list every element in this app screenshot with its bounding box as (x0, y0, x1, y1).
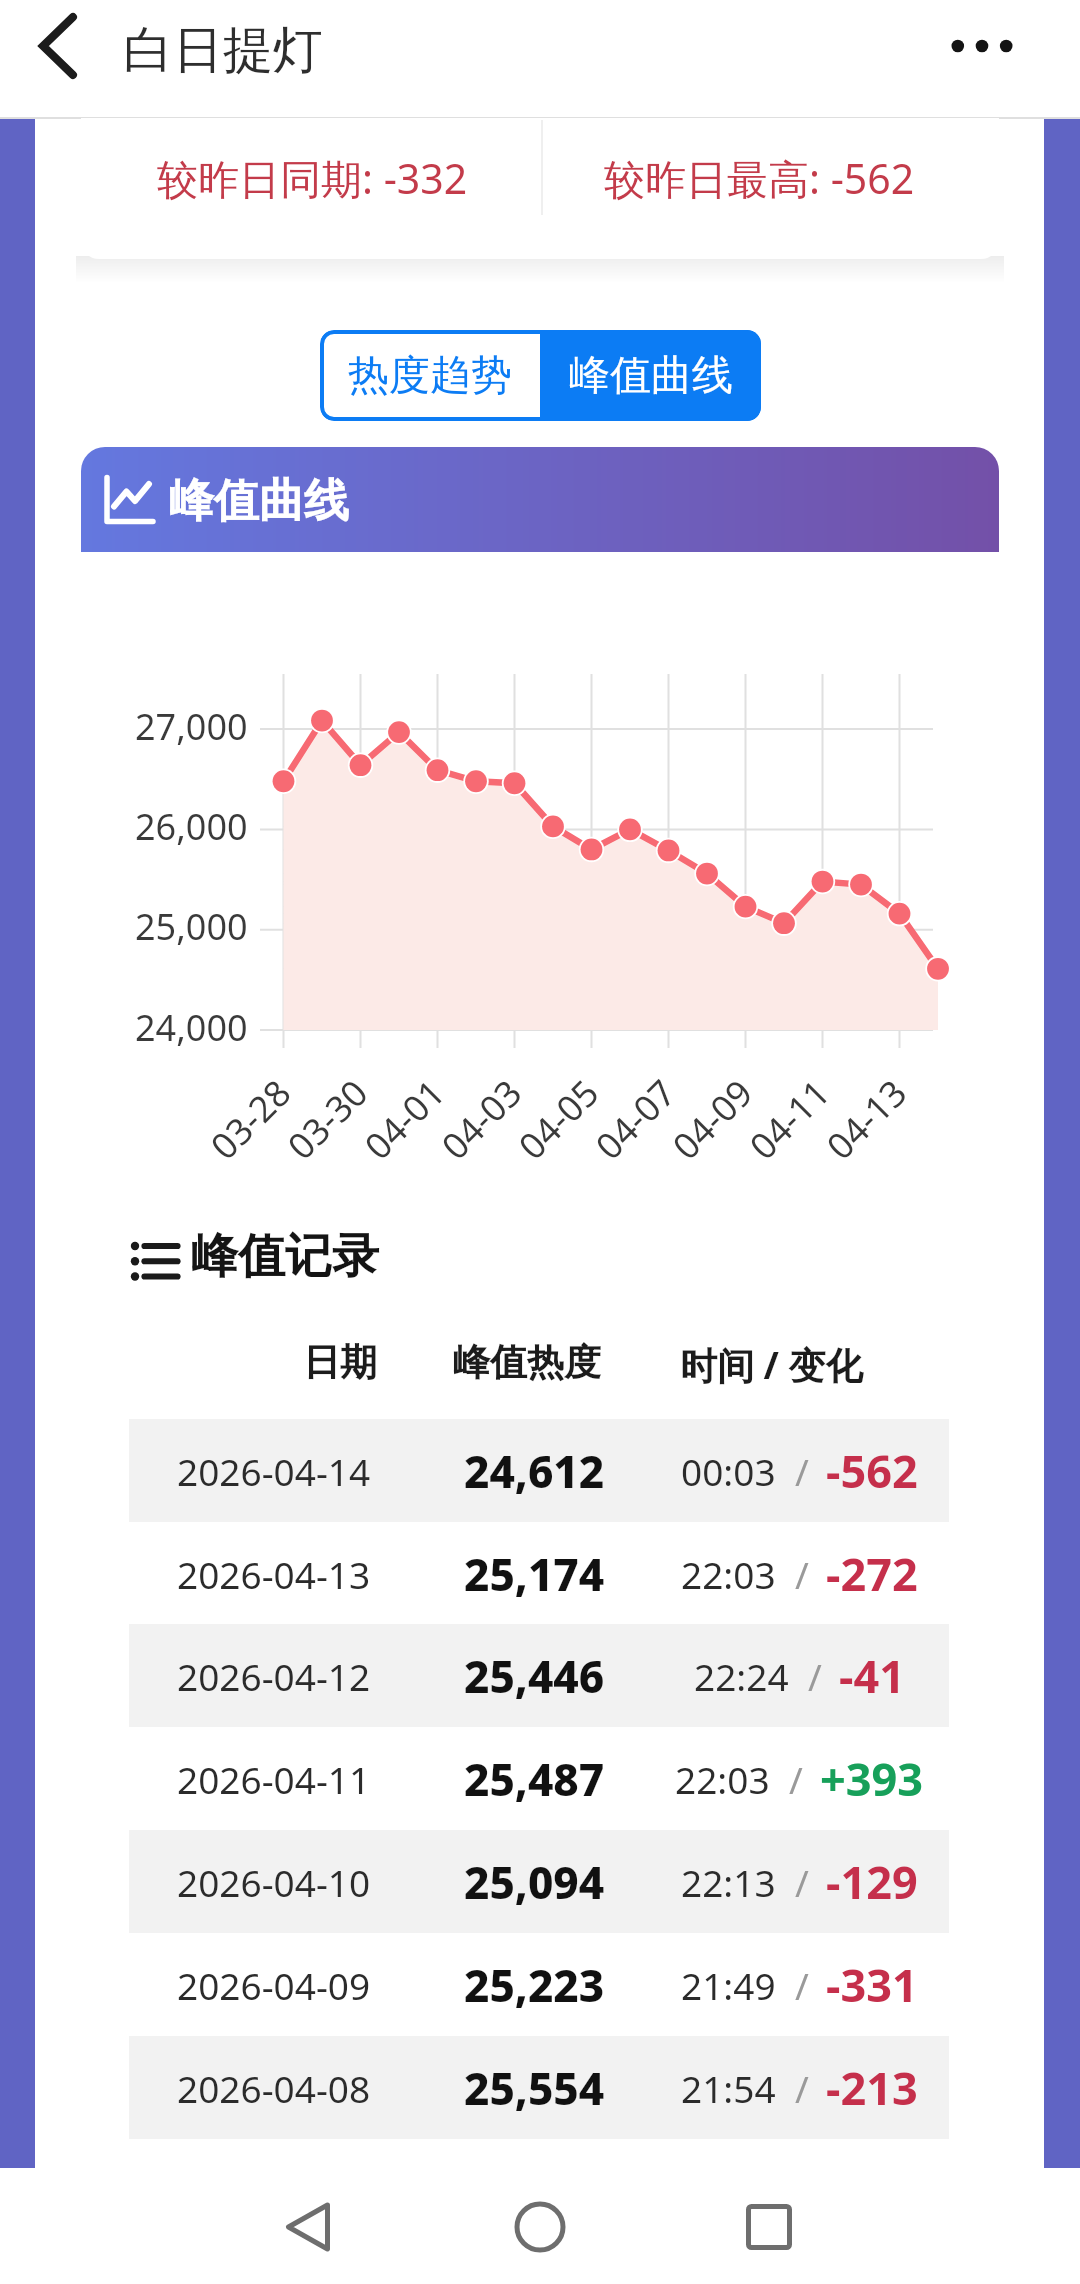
staticText: 2026-04-12 (177, 1651, 371, 1701)
staticText: 22:13 (681, 1857, 776, 1907)
button[interactable]: Home (496, 2183, 584, 2271)
staticText: 22:03 (675, 1754, 770, 1804)
staticText: / (789, 1754, 803, 1804)
staticText: -272 (826, 1543, 918, 1604)
staticText: -41 (839, 1645, 905, 1706)
staticText: 2026-04-08 (177, 2063, 371, 2113)
button[interactable]: 热度趋势 (320, 330, 540, 421)
staticText: / (795, 2063, 809, 2113)
staticText: -562 (826, 1440, 918, 1501)
staticText: 22:24 (694, 1651, 789, 1701)
staticText: / (808, 1651, 822, 1701)
staticText: 日期 (303, 1339, 377, 1386)
staticText: 峰值曲线 (569, 350, 733, 402)
staticText: 2026-04-10 (177, 1857, 371, 1907)
staticText: 25,487 (464, 1749, 605, 1809)
staticText: -331 (826, 1954, 918, 2015)
staticText: 25,094 (464, 1852, 605, 1912)
staticText: 峰值记录 (191, 1227, 379, 1286)
staticText: -213 (826, 2057, 918, 2118)
button[interactable]: Back (16, 4, 100, 88)
staticText: 25,223 (464, 1955, 605, 2015)
staticText: / (795, 1549, 809, 1599)
staticText: 白日提灯 (123, 19, 323, 82)
button[interactable]: Back (264, 2183, 352, 2271)
staticText: 25,446 (464, 1646, 605, 1706)
staticText: 24,612 (464, 1441, 605, 1501)
staticText: / (795, 1446, 809, 1496)
staticText: 00:03 (681, 1446, 776, 1496)
staticText: 22:03 (681, 1549, 776, 1599)
staticText: 时间 / 变化 (680, 1339, 863, 1390)
button[interactable]: Recent apps (725, 2183, 813, 2271)
staticText: 21:49 (681, 1960, 776, 2010)
staticText: -129 (826, 1851, 918, 1912)
staticText: +393 (820, 1748, 923, 1809)
button[interactable]: 2026-04-09 (129, 1933, 949, 2036)
staticText: / (795, 1857, 809, 1907)
staticText: 热度趋势 (348, 350, 512, 402)
staticText: 25,554 (464, 2058, 605, 2118)
staticText: 峰值曲线 (169, 473, 349, 530)
staticText: 较昨日同期: -332 (157, 150, 468, 206)
staticText: 2026-04-14 (177, 1446, 371, 1496)
button[interactable]: More options (938, 2, 1026, 90)
button[interactable]: 2026-04-14 (129, 1419, 949, 1522)
staticText: 21:54 (681, 2063, 776, 2113)
staticText: 2026-04-13 (177, 1549, 371, 1599)
staticText: / (795, 1960, 809, 2010)
button[interactable]: 2026-04-12 (129, 1624, 949, 1727)
button[interactable]: 2026-04-11 (129, 1727, 949, 1830)
button[interactable]: 2026-04-13 (129, 1522, 949, 1625)
staticText: 25,174 (464, 1544, 605, 1604)
staticText: 2026-04-09 (177, 1960, 371, 2010)
staticText: 峰值热度 (453, 1339, 601, 1386)
staticText: 较昨日最高: -562 (604, 150, 915, 206)
staticText: 2026-04-11 (177, 1754, 371, 1804)
button[interactable]: 2026-04-08 (129, 2036, 949, 2139)
button[interactable]: 2026-04-10 (129, 1830, 949, 1933)
button[interactable]: 峰值曲线 (540, 330, 761, 421)
